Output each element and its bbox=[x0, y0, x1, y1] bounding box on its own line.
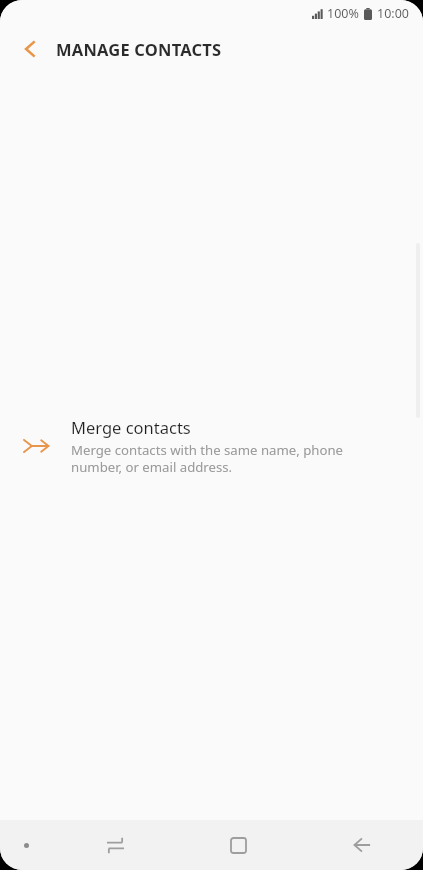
button[interactable]: Back bbox=[300, 820, 423, 870]
button[interactable]: Recent apps bbox=[53, 820, 177, 870]
staticText: 100% bbox=[327, 5, 359, 22]
staticText: MANAGE CONTACTS bbox=[56, 38, 222, 60]
staticText: 10:00 bbox=[377, 5, 409, 22]
button[interactable]: Back bbox=[10, 29, 50, 69]
staticText: Merge contacts bbox=[71, 416, 191, 438]
staticText: Merge contacts with the same name, phone… bbox=[71, 441, 344, 476]
button[interactable]: Home bbox=[177, 820, 300, 870]
button[interactable]: Merge contacts bbox=[0, 71, 423, 820]
